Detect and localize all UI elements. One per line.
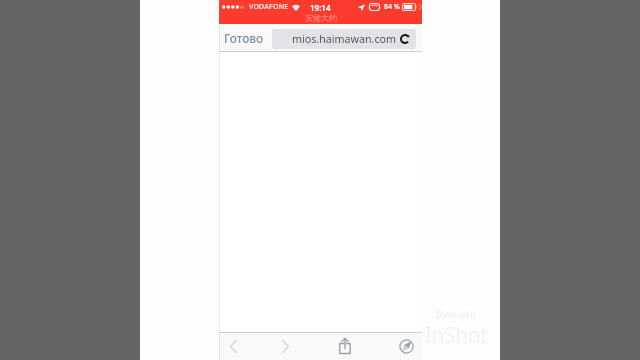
staticText: Готово bbox=[224, 30, 264, 46]
button[interactable]: Reload bbox=[399, 33, 411, 45]
button[interactable]: Готово bbox=[219, 24, 269, 52]
button[interactable]: Forward bbox=[272, 332, 298, 360]
button[interactable]: Share bbox=[330, 332, 360, 360]
staticText: VODAFONE bbox=[249, 2, 289, 12]
staticText: 84 % bbox=[384, 2, 400, 12]
staticText: 19:14 bbox=[310, 2, 331, 13]
staticText: mios.haimawan.com bbox=[292, 32, 397, 47]
staticText: Made with bbox=[436, 309, 476, 320]
button[interactable]: mios.haimawan.com bbox=[272, 29, 416, 49]
button[interactable]: Bookmarks bbox=[392, 332, 420, 360]
staticText: 灾难大约 bbox=[305, 13, 337, 23]
staticText: InShot bbox=[425, 321, 488, 350]
button[interactable]: Back bbox=[220, 332, 246, 360]
